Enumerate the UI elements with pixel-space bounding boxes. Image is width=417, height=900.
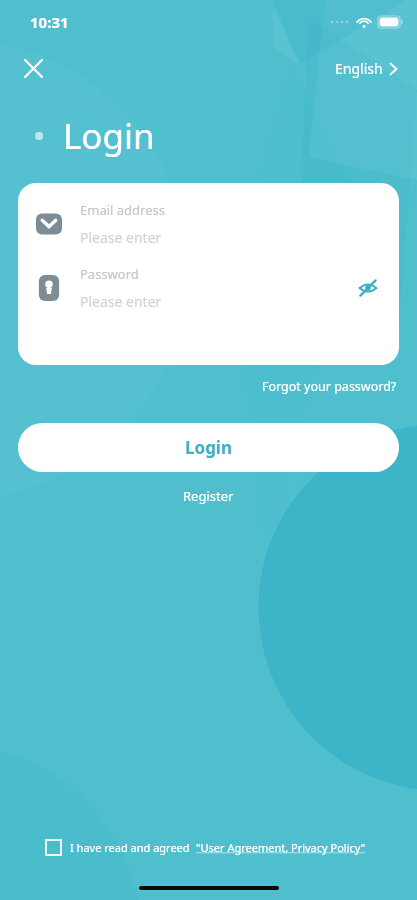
button[interactable]: Password [18, 265, 399, 311]
staticText: Login [185, 436, 233, 459]
staticText: Please enter [80, 292, 162, 311]
staticText: 10:31 [30, 12, 69, 32]
staticText: I have read and agreed [70, 840, 190, 855]
button[interactable]: Register [177, 484, 240, 508]
button[interactable]: Email address [18, 201, 399, 247]
staticText: Email address [80, 201, 165, 219]
staticText: Please enter [80, 228, 162, 247]
staticText: Login [63, 112, 155, 160]
button[interactable]: "User Agreement, Privacy Policy" [196, 840, 366, 855]
button[interactable]: Show password [353, 273, 383, 303]
button[interactable]: Forgot your password? [260, 376, 399, 397]
button[interactable]: Close [16, 51, 50, 85]
staticText: English [335, 59, 383, 78]
button[interactable] [40, 834, 66, 860]
button[interactable]: Login [18, 423, 399, 472]
button[interactable]: English [331, 53, 401, 84]
staticText: Password [80, 265, 139, 283]
